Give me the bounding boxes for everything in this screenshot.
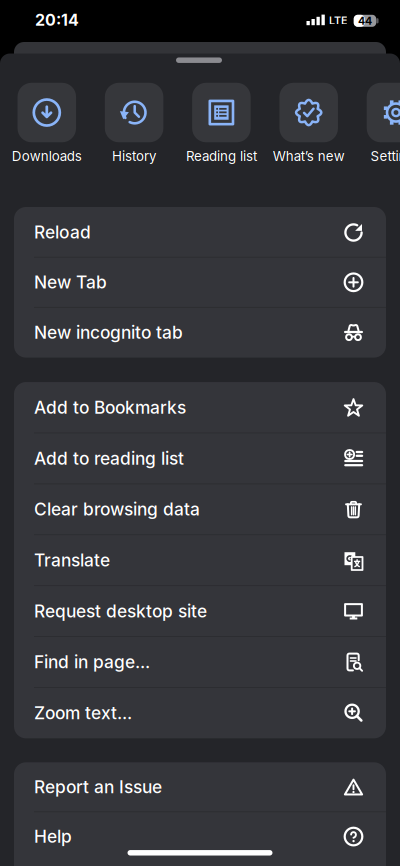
button[interactable]: What’s new <box>273 83 345 164</box>
staticText: Downloads <box>12 148 82 164</box>
button[interactable]: Report an Issue <box>14 762 386 812</box>
staticText: Settings <box>370 148 400 164</box>
staticText: Find in page... <box>34 652 150 672</box>
staticText: 20:14 <box>35 11 79 29</box>
staticText: Add to Bookmarks <box>34 397 186 418</box>
staticText: What’s new <box>273 148 345 164</box>
button[interactable]: Request desktop site <box>14 586 386 637</box>
button[interactable]: New Tab <box>14 257 386 307</box>
button[interactable]: New incognito tab <box>14 307 386 358</box>
staticText: Add to reading list <box>34 448 184 469</box>
button[interactable]: Help <box>14 812 386 861</box>
button[interactable]: Settings <box>367 83 400 164</box>
staticText: New Tab <box>34 272 107 292</box>
button[interactable]: Add to Bookmarks <box>14 382 386 433</box>
button[interactable]: Zoom text... <box>14 687 386 738</box>
staticText: Reading list <box>186 148 257 164</box>
button[interactable]: History <box>105 83 163 164</box>
staticText: Clear browsing data <box>34 499 200 519</box>
button[interactable]: Add to reading list <box>14 433 386 484</box>
button[interactable]: Translate <box>14 535 386 586</box>
staticText: Translate <box>34 550 110 570</box>
staticText: Report an Issue <box>34 777 162 797</box>
button[interactable]: Clear browsing data <box>14 484 386 535</box>
button[interactable]: Downloads <box>12 83 82 164</box>
button[interactable]: Reading list <box>186 83 257 164</box>
staticText: 44 <box>358 14 372 27</box>
staticText: Zoom text... <box>34 703 132 723</box>
staticText: Request desktop site <box>34 601 207 621</box>
staticText: LTE <box>329 14 347 27</box>
staticText: Help <box>34 826 72 847</box>
staticText: Reload <box>34 222 91 242</box>
staticText: History <box>112 148 156 164</box>
staticText: New incognito tab <box>34 322 183 343</box>
button[interactable]: Find in page... <box>14 637 386 687</box>
button[interactable]: Reload <box>14 207 386 257</box>
